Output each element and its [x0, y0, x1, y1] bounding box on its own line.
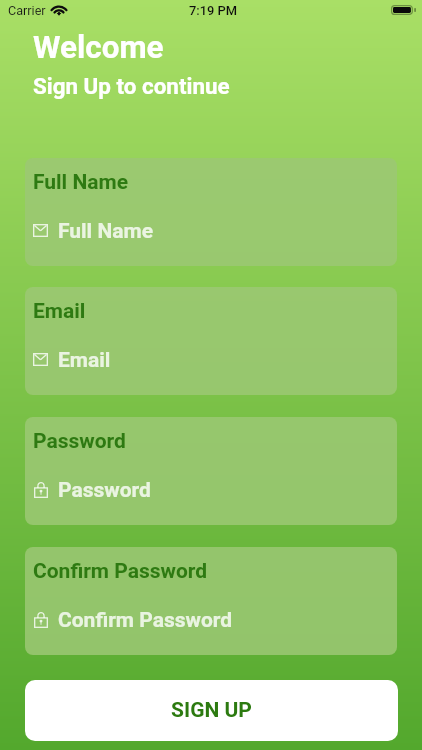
button[interactable]: Confirm Password [25, 547, 397, 655]
staticText: SIGN UP [171, 698, 252, 723]
button[interactable]: SIGN UP [25, 680, 398, 741]
staticText: Sign Up to continue [33, 73, 230, 99]
button[interactable]: Full Name [25, 158, 397, 266]
button[interactable]: Password [25, 417, 397, 525]
other: Battery full [391, 5, 416, 15]
staticText: Confirm Password [33, 559, 208, 584]
staticText: Welcome [33, 29, 164, 66]
staticText: Full Name [33, 170, 129, 195]
staticText: Full Name [58, 219, 154, 244]
button[interactable]: Email [25, 287, 397, 395]
other: Wi-Fi signal [51, 5, 67, 16]
staticText: Email [58, 348, 111, 373]
staticText: Carrier [8, 3, 46, 18]
staticText: Confirm Password [58, 608, 233, 633]
staticText: Password [58, 478, 151, 503]
staticText: Password [33, 429, 126, 454]
staticText: Email [33, 299, 86, 324]
staticText: 7:19 PM [189, 3, 238, 18]
